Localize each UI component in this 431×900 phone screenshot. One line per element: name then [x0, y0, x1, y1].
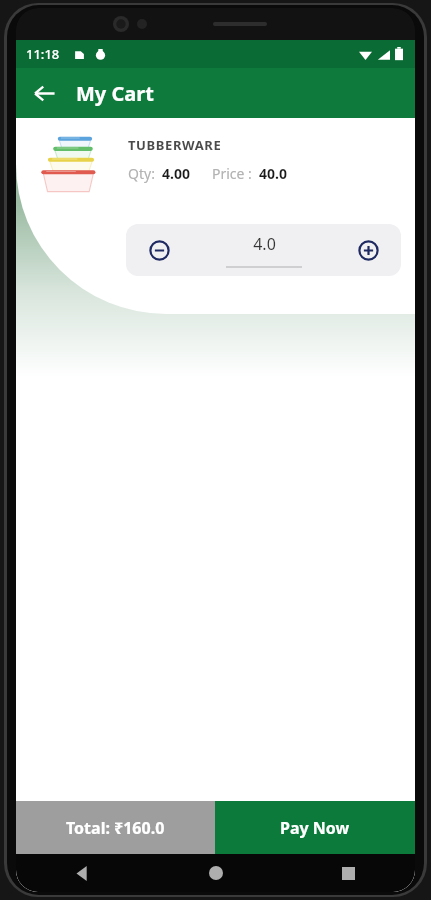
button[interactable]: Back — [24, 73, 64, 113]
staticText: Price : — [212, 164, 252, 183]
staticText: Pay Now — [280, 817, 350, 839]
staticText: 4.0 — [253, 233, 276, 255]
button[interactable]: Home — [149, 854, 282, 892]
staticText: Total: ₹160.0 — [66, 817, 165, 839]
button[interactable]: Pay Now — [215, 801, 415, 854]
button[interactable]: Total: ₹160.0 — [16, 801, 215, 854]
staticText: 11:18 — [26, 45, 60, 63]
button[interactable]: Increase quantity — [351, 233, 385, 267]
button[interactable]: Back — [16, 854, 149, 892]
staticText: TUBBERWARE — [128, 136, 222, 154]
button[interactable]: Recent apps — [282, 854, 415, 892]
button[interactable]: Decrease quantity — [142, 233, 176, 267]
staticText: My Cart — [76, 80, 154, 107]
staticText: Qty: — [128, 164, 155, 183]
staticText: 4.00 — [162, 164, 190, 183]
button[interactable]: TUBBERWARE — [16, 118, 415, 314]
staticText: 40.0 — [259, 164, 287, 183]
